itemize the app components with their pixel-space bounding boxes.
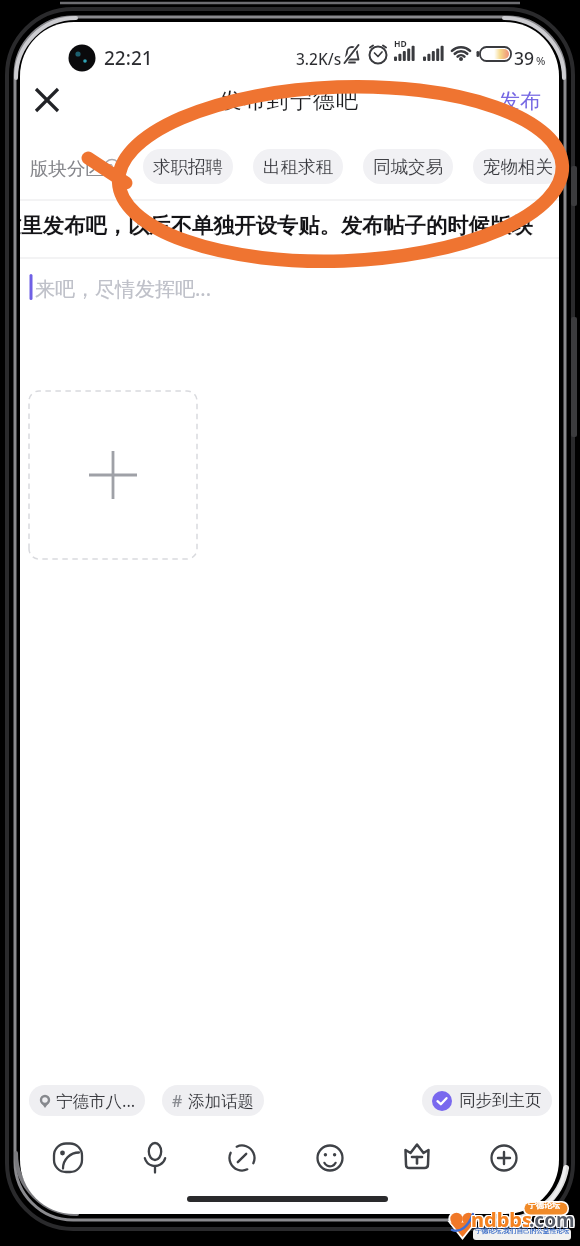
staticText: ndbbs (471, 1205, 532, 1232)
staticText: ndbbs (470, 1207, 531, 1234)
button[interactable] (28, 390, 198, 560)
staticText: % (536, 53, 546, 68)
button[interactable] (46, 1136, 90, 1180)
staticText: .com (530, 1207, 576, 1233)
staticText: .com (529, 1208, 575, 1234)
staticText: ndbbs (470, 1206, 531, 1233)
staticText: .com (530, 1208, 576, 1234)
staticText: ndbbs (471, 1207, 532, 1234)
staticText: 39 (514, 46, 535, 70)
staticText: 3.2K/s (296, 48, 342, 69)
staticText: ndbbs (472, 1207, 533, 1234)
staticText: 来吧，尽情发挥吧... (35, 275, 212, 302)
staticText: ? (108, 160, 113, 175)
staticText: ndbbs (470, 1205, 531, 1232)
button[interactable] (308, 1136, 352, 1180)
button[interactable]: 发布 (488, 84, 552, 118)
staticText: 宁德论坛,我们自己的公益性论坛 (475, 1226, 570, 1235)
button[interactable]: 同城交易 (363, 149, 453, 184)
staticText: 宁德论坛 (528, 1200, 560, 1210)
staticText: .com (530, 1206, 576, 1232)
button[interactable]: 出租求租 (253, 149, 343, 184)
staticText: 同城交易 (373, 156, 443, 178)
button[interactable]: 同步到主页 (422, 1085, 552, 1116)
staticText: ndbbs (472, 1206, 533, 1233)
staticText: .com (528, 1207, 574, 1233)
staticText: .com (529, 1207, 575, 1233)
staticText: 同步到主页 (459, 1090, 542, 1111)
button[interactable] (220, 1136, 264, 1180)
staticText: HD (394, 38, 407, 50)
staticText: 宠物相关 (483, 156, 553, 178)
staticText: 发布到宁德吧 (220, 87, 360, 115)
button[interactable] (27, 80, 67, 120)
staticText: 22:21 (104, 45, 153, 71)
staticText: 这里发布吧，以后不单独开设专贴。发布帖子的时候版块 (20, 212, 533, 239)
staticText: 添加话题 (188, 1091, 254, 1112)
button[interactable]: 求职招聘 (143, 149, 233, 184)
staticText: 发布 (499, 88, 541, 114)
staticText: 宁德市八... (56, 1089, 136, 1112)
staticText: 求职招聘 (153, 156, 223, 178)
button[interactable] (395, 1136, 439, 1180)
staticText: 出租求租 (263, 156, 333, 178)
button[interactable]: # (162, 1085, 264, 1116)
staticText: 版块分区 (30, 157, 104, 180)
button[interactable] (482, 1136, 526, 1180)
staticText: .com (528, 1206, 574, 1232)
staticText: .com (528, 1208, 574, 1234)
staticText: .com (529, 1206, 575, 1232)
staticText: # (172, 1090, 183, 1112)
button[interactable] (133, 1136, 177, 1180)
button[interactable]: 宁德市八... (29, 1085, 145, 1116)
staticText: ndbbs (472, 1205, 533, 1232)
staticText: ndbbs (471, 1206, 532, 1233)
button[interactable]: 宠物相关 (473, 149, 559, 184)
